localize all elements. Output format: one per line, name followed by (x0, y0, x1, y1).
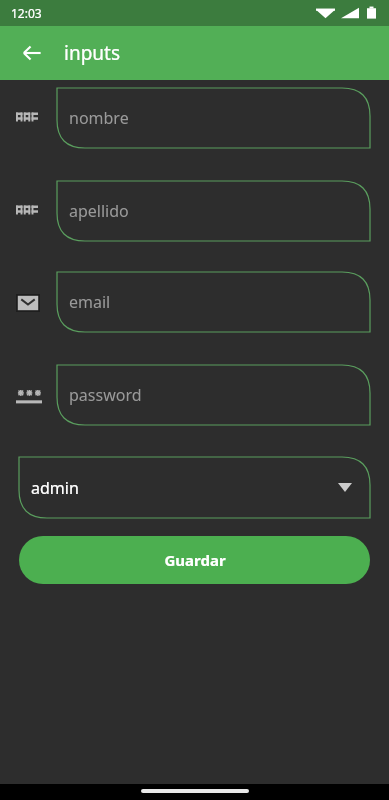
staticText: password (69, 384, 142, 406)
button[interactable]: admin (19, 457, 370, 518)
button[interactable]: Guardar (19, 536, 370, 584)
staticText: inputs (64, 40, 121, 66)
staticText: apellido (69, 200, 129, 222)
button[interactable]: Back (12, 33, 52, 73)
staticText: Guardar (164, 550, 226, 570)
button[interactable]: apellido (57, 181, 370, 241)
staticText: admin (31, 477, 79, 499)
button[interactable]: password (57, 365, 370, 425)
button[interactable]: email (57, 272, 370, 332)
button[interactable]: nombre (57, 88, 370, 148)
staticText: 12:03 (11, 5, 42, 21)
staticText: email (69, 291, 111, 313)
staticText: nombre (69, 107, 129, 129)
